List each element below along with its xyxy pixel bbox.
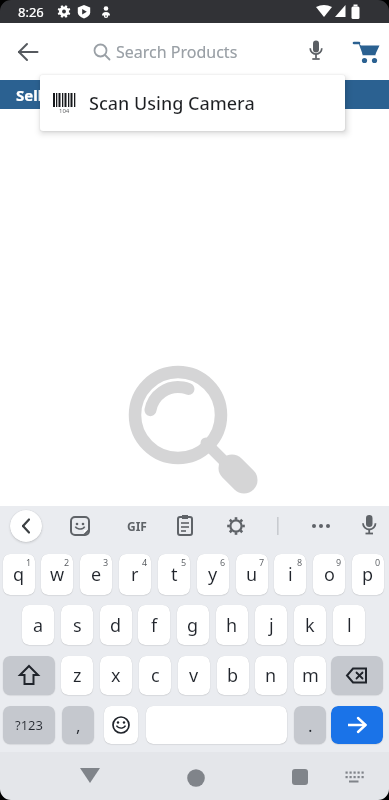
button[interactable]	[220, 510, 252, 542]
button[interactable]: g	[177, 605, 209, 645]
staticText: f	[151, 613, 158, 638]
button[interactable]: q	[3, 554, 35, 595]
staticText: n	[265, 663, 277, 688]
button[interactable]	[353, 510, 385, 542]
button[interactable]: h	[216, 605, 248, 645]
button[interactable]: u	[236, 554, 268, 595]
button[interactable]: ?123	[3, 706, 55, 744]
button[interactable]	[12, 36, 44, 68]
staticText: m	[302, 663, 319, 688]
button[interactable]: i	[274, 554, 306, 595]
button[interactable]: c	[139, 656, 171, 695]
staticText: 2	[64, 556, 70, 568]
button[interactable]: x	[100, 656, 132, 695]
staticText: 3	[103, 556, 109, 568]
staticText: 0	[375, 556, 381, 568]
button[interactable]: b	[217, 656, 249, 695]
button[interactable]: y	[197, 554, 229, 595]
button[interactable]	[74, 758, 106, 790]
button[interactable]: n	[255, 656, 287, 695]
button[interactable]: w	[41, 554, 73, 595]
button[interactable]	[64, 510, 96, 542]
staticText: i	[288, 562, 293, 587]
button[interactable]: m	[294, 656, 326, 695]
button[interactable]	[10, 510, 42, 542]
button[interactable]	[305, 510, 337, 542]
button[interactable]	[3, 656, 55, 695]
button[interactable]	[340, 760, 368, 788]
staticText: Search Products	[116, 41, 238, 63]
button[interactable]	[350, 36, 384, 70]
button[interactable]	[331, 656, 383, 695]
button[interactable]: v	[178, 656, 210, 695]
staticText: v	[189, 663, 199, 688]
button[interactable]: d	[100, 605, 132, 645]
button[interactable]: ,	[62, 706, 94, 744]
staticText: Scan Using Camera	[89, 91, 255, 116]
button[interactable]: p	[352, 554, 384, 595]
button[interactable]: a	[22, 605, 54, 645]
button[interactable]: k	[294, 605, 326, 645]
staticText: u	[246, 562, 258, 587]
button[interactable]: l	[333, 605, 365, 645]
staticText: 7	[259, 556, 265, 568]
button[interactable]	[180, 762, 212, 794]
staticText: z	[73, 663, 82, 688]
staticText: j	[269, 613, 274, 638]
staticText: l	[347, 613, 352, 638]
staticText: 9	[336, 556, 342, 568]
button[interactable]: o	[313, 554, 345, 595]
staticText: r	[131, 562, 139, 587]
button[interactable]: .	[294, 706, 326, 744]
button[interactable]	[300, 36, 332, 68]
button[interactable]: t	[158, 554, 190, 595]
button[interactable]: GIF	[121, 510, 153, 542]
button[interactable]	[284, 761, 316, 793]
staticText: 5	[181, 556, 187, 568]
button[interactable]: e	[80, 554, 112, 595]
button[interactable]	[104, 706, 138, 744]
staticText: ?123	[15, 716, 43, 734]
staticText: w	[50, 562, 65, 587]
staticText: GIF	[127, 518, 147, 534]
button[interactable]: Search Products	[92, 41, 238, 63]
button[interactable]	[331, 706, 383, 744]
staticText: h	[226, 613, 238, 638]
button[interactable]: 104	[40, 75, 345, 131]
staticText: .	[308, 714, 313, 737]
staticText: p	[362, 562, 374, 587]
staticText: d	[110, 613, 122, 638]
staticText: 1	[26, 556, 32, 568]
staticText: Sell On	[16, 85, 68, 105]
button[interactable]: s	[61, 605, 93, 645]
staticText: x	[111, 663, 121, 688]
staticText: k	[305, 613, 315, 638]
staticText: t	[171, 562, 178, 587]
button[interactable]: f	[138, 605, 170, 645]
button[interactable]: Sell On	[0, 80, 389, 109]
button[interactable]: r	[119, 554, 151, 595]
button[interactable]: j	[255, 605, 287, 645]
staticText: 104	[59, 107, 70, 115]
staticText: e	[91, 562, 102, 587]
button[interactable]: z	[61, 656, 93, 695]
staticText: c	[151, 663, 160, 688]
staticText: o	[324, 562, 335, 587]
button[interactable]	[169, 510, 201, 542]
staticText: s	[73, 613, 82, 638]
staticText: b	[227, 663, 239, 688]
staticText: 8	[297, 556, 303, 568]
staticText: q	[13, 562, 25, 587]
staticText: 4	[142, 556, 148, 568]
staticText: g	[187, 613, 199, 638]
staticText: y	[208, 562, 218, 587]
staticText: a	[33, 613, 44, 638]
staticText: 8:26	[18, 3, 44, 21]
staticText: 6	[220, 556, 226, 568]
staticText: ,	[76, 714, 81, 737]
